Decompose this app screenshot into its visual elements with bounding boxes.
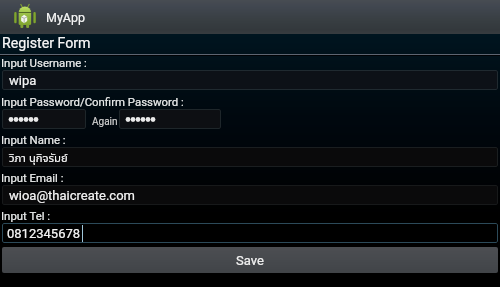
button[interactable] (2, 109, 86, 129)
staticText: Save (236, 253, 264, 268)
button[interactable]: wioa@thaicreate.com (2, 185, 498, 205)
staticText: Input Password/Confirm Password : (1, 95, 184, 108)
staticText: wipa (9, 73, 37, 88)
staticText: Input Tel : (1, 209, 51, 222)
other: App icon (14, 4, 36, 28)
staticText: wioa@thaicreate.com (9, 188, 135, 203)
staticText: MyApp (46, 10, 86, 25)
staticText: Input Username : (1, 56, 87, 69)
staticText: วิภา นุกิจรัมย์ (9, 150, 68, 165)
staticText: 0812345678 (7, 226, 81, 241)
button[interactable]: wipa (2, 70, 498, 90)
staticText: Register Form (2, 35, 91, 52)
staticText: Input Email : (1, 171, 64, 184)
staticText: Again (92, 116, 118, 128)
button[interactable]: Save (2, 247, 498, 273)
staticText: Input Name : (1, 133, 66, 146)
button[interactable] (119, 109, 221, 129)
button[interactable]: 0812345678 (2, 223, 498, 243)
button[interactable]: วิภา นุกิจรัมย์ (2, 147, 498, 167)
